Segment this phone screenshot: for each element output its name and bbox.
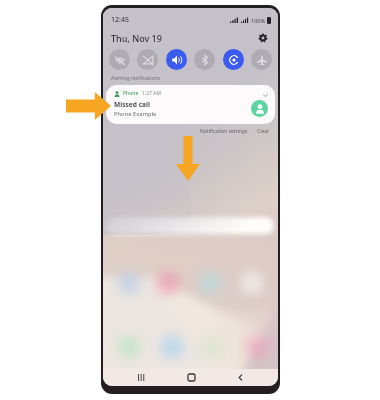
button[interactable]: Mobile data <box>137 49 158 70</box>
button[interactable]: Clear <box>257 128 270 135</box>
button[interactable] <box>157 272 179 294</box>
button[interactable]: Home <box>179 369 203 386</box>
staticText: Phone Example <box>114 110 157 118</box>
button[interactable]: Sound <box>166 49 187 70</box>
button[interactable]: Auto rotate <box>223 49 244 70</box>
staticText: Thu, Nov 19 <box>111 32 162 44</box>
other: Pointer arrow down <box>176 136 200 181</box>
button[interactable]: Search <box>107 217 274 234</box>
button[interactable] <box>118 272 140 294</box>
other: Expand <box>263 93 268 98</box>
staticText: Alerting notifications <box>111 75 160 82</box>
button[interactable] <box>246 336 268 358</box>
staticText: Missed call <box>114 100 150 109</box>
button[interactable] <box>241 272 263 294</box>
button[interactable]: Notification settings <box>200 128 248 135</box>
button[interactable]: Contact <box>251 100 268 117</box>
button[interactable]: Settings <box>257 32 269 44</box>
button[interactable] <box>118 336 140 358</box>
staticText: Phone <box>123 90 139 97</box>
button[interactable]: Phone <box>106 85 275 124</box>
button[interactable]: Back <box>228 369 252 386</box>
staticText: 12:45 <box>111 15 129 25</box>
button[interactable]: Wi-Fi <box>109 49 130 70</box>
button[interactable]: Recents <box>129 369 153 386</box>
button[interactable]: Airplane mode <box>251 49 272 70</box>
button[interactable] <box>161 336 183 358</box>
button[interactable]: Bluetooth <box>194 49 215 70</box>
button[interactable] <box>199 272 221 294</box>
other: Pointer arrow right <box>66 92 111 120</box>
staticText: 1:27 AM <box>142 90 161 97</box>
staticText: 100% <box>251 17 266 24</box>
